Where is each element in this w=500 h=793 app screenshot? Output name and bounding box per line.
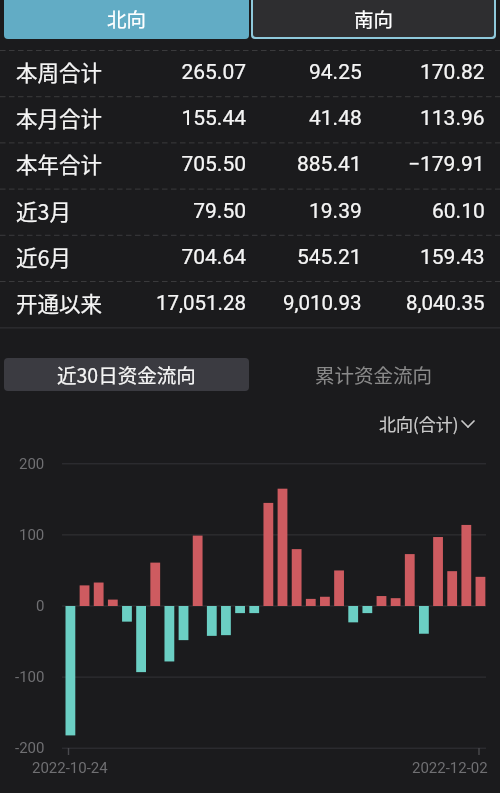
staticText: 本周合计: [16, 56, 103, 87]
staticText: 200: [19, 455, 45, 473]
staticText: 本月合计: [16, 102, 103, 133]
staticText: 60.10: [432, 199, 485, 224]
staticText: 94.25: [309, 60, 362, 85]
staticText: 155.44: [181, 106, 246, 131]
staticText: 累计资金流向: [315, 360, 433, 388]
button[interactable]: 开通以来: [0, 281, 500, 327]
button[interactable]: 近3月: [0, 189, 500, 235]
staticText: 545.21: [297, 245, 362, 270]
staticText: −179.91: [408, 152, 485, 177]
staticText: 17,051.28: [155, 291, 246, 315]
staticText: -200: [15, 739, 45, 757]
staticText: 2022-12-02: [412, 759, 488, 777]
staticText: 北向: [107, 4, 147, 32]
button[interactable]: 北向(合计): [379, 410, 477, 438]
staticText: 113.96: [420, 106, 485, 131]
staticText: 近3月: [16, 195, 71, 226]
staticText: 170.82: [420, 60, 485, 85]
staticText: 2022-10-24: [32, 759, 108, 777]
staticText: 0: [36, 597, 45, 615]
button[interactable]: 近6月: [0, 235, 500, 281]
button[interactable]: 本年合计: [0, 142, 500, 188]
staticText: -100: [15, 668, 45, 686]
staticText: 近6月: [16, 241, 71, 272]
button[interactable]: 北向: [4, 0, 249, 39]
staticText: 265.07: [181, 60, 246, 85]
staticText: 8,040.35: [406, 291, 485, 315]
staticText: 近30日资金流向: [57, 360, 196, 388]
button[interactable]: 本月合计: [0, 96, 500, 142]
staticText: 本年合计: [16, 148, 103, 179]
staticText: 19.39: [309, 199, 362, 224]
staticText: 705.50: [181, 152, 246, 177]
staticText: 开通以来: [16, 287, 103, 318]
button[interactable]: 累计资金流向: [251, 358, 496, 391]
staticText: 704.64: [181, 245, 246, 270]
button[interactable]: 近30日资金流向: [4, 358, 249, 391]
button[interactable]: 本周合计: [0, 50, 500, 96]
other: Select series: [459, 415, 477, 433]
staticText: 9,010.93: [283, 291, 362, 315]
staticText: 南向: [354, 4, 394, 32]
staticText: 41.48: [309, 106, 362, 131]
button[interactable]: 南向: [253, 0, 494, 37]
staticText: 北向(合计): [379, 411, 459, 436]
staticText: 79.50: [193, 199, 246, 224]
staticText: 100: [19, 526, 45, 544]
staticText: 159.43: [420, 245, 485, 270]
staticText: 885.41: [297, 152, 362, 177]
